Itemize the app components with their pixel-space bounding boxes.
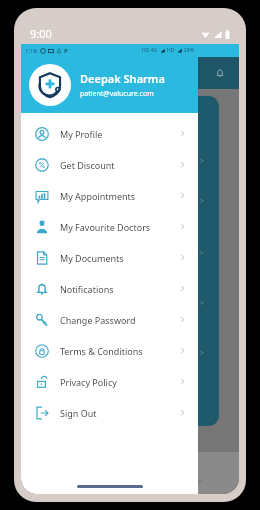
staticText: Get Discount [60,159,115,171]
staticText: Sign Out [60,407,97,419]
staticText: My Profile [60,128,103,140]
staticText: patient@valucure.com [80,89,154,99]
button[interactable]: My Documents [21,242,198,273]
staticText: HD [167,47,175,54]
staticText: 9:00 [30,26,52,41]
staticText: Notifications [60,283,114,295]
button[interactable]: Terms & Conditions [21,335,198,366]
staticText: 24% [184,47,194,54]
button[interactable]: My Profile [21,118,198,149]
staticText: > [199,154,205,166]
button[interactable]: Deepak Sharma [21,57,198,113]
staticText: Deepak Sharma [80,71,165,86]
button[interactable]: Change Password [21,304,198,335]
staticText: y Doctor [179,477,203,485]
button[interactable]: Sign Out [21,397,198,428]
staticText: 1:18 [25,47,37,55]
button[interactable]: Privacy Policy [21,366,198,397]
staticText: > [199,346,205,358]
button[interactable]: Notifications [215,68,225,78]
staticText: HD 4G [142,47,158,54]
button[interactable]: My Appointments [21,180,198,211]
staticText: P [64,47,68,55]
staticText: Change Password [60,314,136,326]
staticText: Privacy Policy [60,376,117,388]
staticText: Terms & Conditions [60,345,143,357]
button[interactable]: Notifications [21,273,198,304]
staticText: My Appointments [60,190,136,202]
button[interactable]: y Doctor [179,462,203,485]
button[interactable]: My Favourite Doctors [21,211,198,242]
staticText: My Documents [60,252,124,264]
staticText: > [199,194,205,206]
staticText: My Favourite Doctors [60,221,151,233]
staticText: > [199,246,205,258]
button[interactable]: Get Discount [21,149,198,180]
staticText: > [199,296,205,308]
